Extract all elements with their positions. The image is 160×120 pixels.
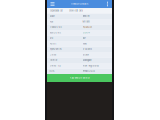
staticText: Mahogany <box>82 59 91 62</box>
staticText: Year <box>49 20 53 23</box>
button[interactable]: More options <box>103 0 112 8</box>
staticText: Owner Tip <box>49 64 60 67</box>
button[interactable]: Menu <box>47 0 58 8</box>
staticText: 3 12/2014 <box>82 48 91 51</box>
staticText: Colour <box>49 53 56 56</box>
staticText: Make <box>49 15 54 18</box>
staticText: Expandable Cat <box>50 9 63 12</box>
staticText: Milano <box>82 20 89 23</box>
staticText: FUEL <box>49 70 54 73</box>
staticText: PETROL/GLS <box>82 70 94 73</box>
staticText: Bentley <box>82 15 89 18</box>
button[interactable]: Add Vehicle Service <box>47 74 112 82</box>
staticText: VIN <box>49 37 53 40</box>
staticText: Add Vehicle Service <box>69 77 89 79</box>
staticText: Y996 <box>82 42 86 45</box>
staticText: Show/Edit Data <box>69 9 83 12</box>
staticText: Vehicle No. <box>49 31 61 34</box>
staticText: New Registered <box>82 64 98 67</box>
staticText: SILVER <box>82 53 88 56</box>
staticText: PQ62GLB <box>82 26 91 29</box>
staticText: GEY174 <box>82 31 89 34</box>
staticText: Types/Series <box>49 48 61 51</box>
staticText: Interior <box>49 59 57 62</box>
staticText: Permit <box>49 42 56 45</box>
staticText: B27 <box>82 37 85 40</box>
staticText: Vehicle Details <box>71 2 88 5</box>
staticText: Chassis No. <box>49 26 62 29</box>
